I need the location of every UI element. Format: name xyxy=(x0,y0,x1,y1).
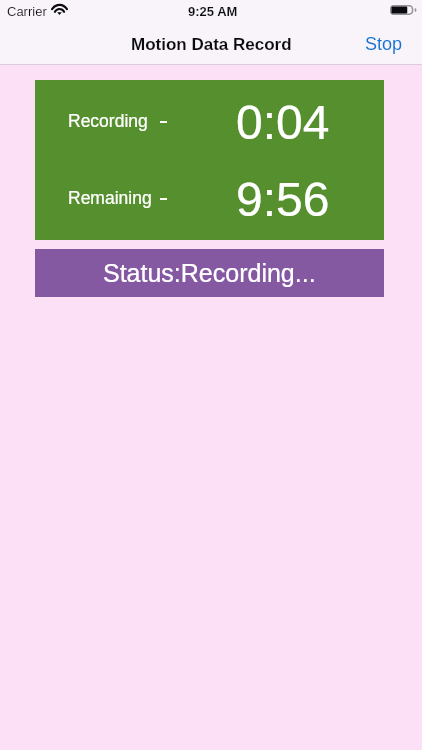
staticText: Motion Data Record xyxy=(131,35,292,54)
other: Battery xyxy=(390,5,416,15)
button[interactable]: Status:Recording... xyxy=(35,249,384,297)
staticText: 9:25 AM xyxy=(188,4,238,19)
staticText: Carrier xyxy=(7,4,47,19)
staticText: Status:Recording... xyxy=(103,259,316,287)
staticText: Stop xyxy=(365,34,403,54)
button[interactable]: Stop xyxy=(345,31,422,63)
staticText: Remaining xyxy=(68,188,152,208)
staticText: 0:04 xyxy=(236,96,330,150)
staticText: 9:56 xyxy=(236,173,330,227)
staticText: Recording xyxy=(68,111,148,131)
other: Wi-Fi xyxy=(52,4,67,15)
